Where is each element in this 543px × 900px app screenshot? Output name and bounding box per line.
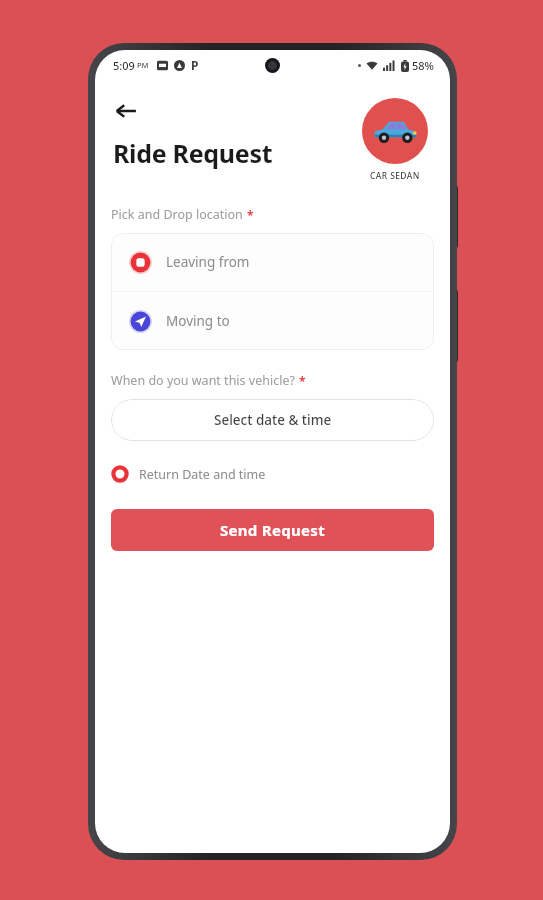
staticText: Return Date and time bbox=[139, 466, 266, 483]
button[interactable]: Back bbox=[109, 94, 143, 128]
staticText: CAR SEDAN bbox=[370, 170, 420, 182]
staticText: Ride Request bbox=[113, 136, 273, 170]
button[interactable]: Send Request bbox=[111, 509, 434, 551]
button[interactable]: Moving to bbox=[111, 292, 434, 350]
staticText: Select date & time bbox=[214, 411, 332, 429]
staticText: PM bbox=[137, 60, 149, 70]
staticText: 58% bbox=[412, 58, 434, 73]
staticText: * bbox=[299, 373, 306, 389]
staticText: 5:09 bbox=[113, 58, 135, 73]
button[interactable]: Car sedan bbox=[362, 98, 428, 182]
button[interactable]: Return Date and time bbox=[111, 463, 266, 485]
button[interactable]: Leaving from bbox=[111, 233, 434, 291]
staticText: Pick and Drop location bbox=[111, 206, 243, 223]
button[interactable]: Select date & time bbox=[111, 399, 434, 441]
staticText: Moving to bbox=[166, 312, 230, 330]
staticText: P bbox=[191, 57, 199, 73]
staticText: * bbox=[247, 207, 254, 223]
staticText: When do you want this vehicle? bbox=[111, 372, 295, 389]
other: Car sedan bbox=[362, 98, 428, 164]
staticText: Leaving from bbox=[166, 253, 250, 271]
staticText: Send Request bbox=[220, 520, 325, 540]
